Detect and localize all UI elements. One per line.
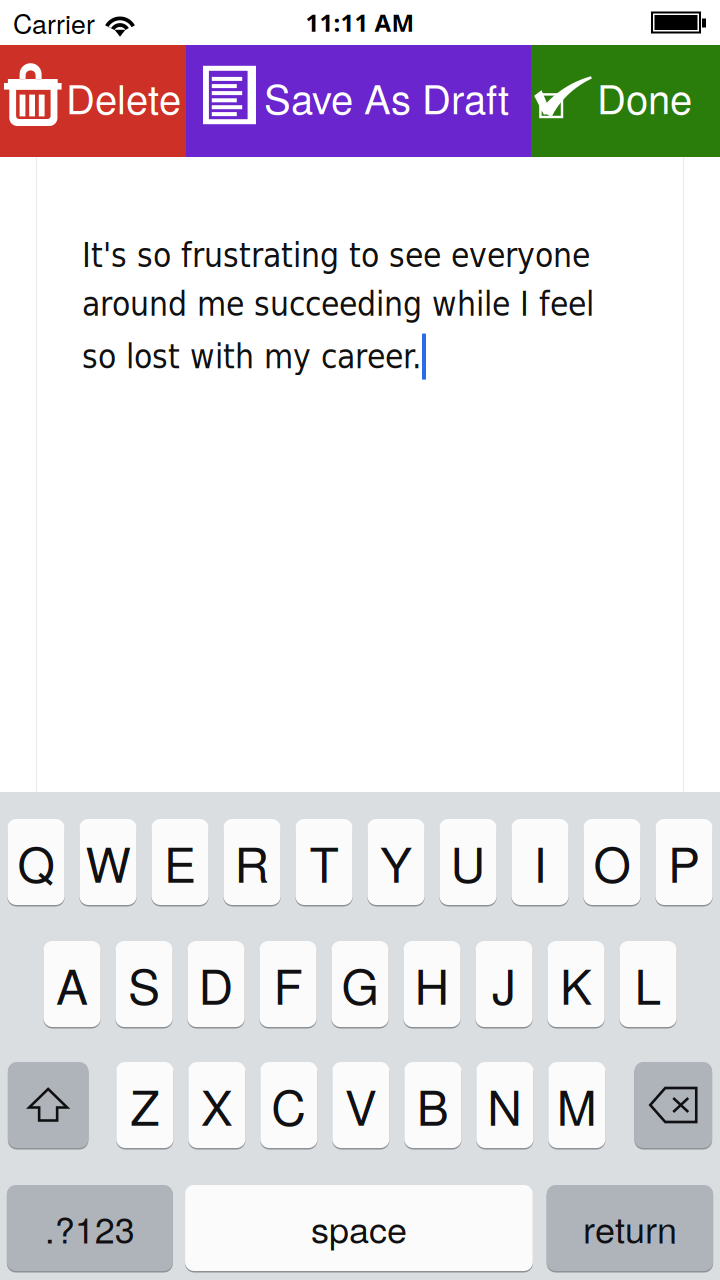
button[interactable]: space <box>185 1185 533 1273</box>
staticText: It's so frustrating to see everyone <box>82 236 590 275</box>
button[interactable]: L <box>619 941 677 1029</box>
button[interactable]: E <box>151 819 209 907</box>
button[interactable]: Shift <box>8 1062 88 1150</box>
button[interactable]: Y <box>367 819 425 907</box>
button[interactable]: F <box>259 941 317 1029</box>
staticText: L <box>634 950 661 1018</box>
button[interactable]: Save As Draft <box>186 45 531 157</box>
staticText: F <box>273 950 302 1018</box>
button[interactable]: Done <box>531 45 720 157</box>
button[interactable]: B <box>404 1062 461 1150</box>
staticText: A <box>56 950 88 1018</box>
staticText: Z <box>130 1071 159 1139</box>
button[interactable]: A <box>43 941 101 1029</box>
staticText: .?123 <box>45 1202 135 1254</box>
button[interactable]: T <box>295 819 353 907</box>
staticText: N <box>487 1071 522 1139</box>
staticText: return <box>583 1202 677 1254</box>
staticText: Carrier <box>13 3 95 42</box>
button[interactable]: N <box>476 1062 533 1150</box>
button[interactable]: Q <box>7 819 65 907</box>
button[interactable]: D <box>187 941 245 1029</box>
staticText: U <box>450 828 485 896</box>
staticText: I <box>533 828 546 896</box>
button[interactable]: return <box>547 1185 713 1273</box>
staticText: X <box>201 1071 233 1139</box>
button[interactable]: G <box>331 941 389 1029</box>
staticText: Save As Draft <box>264 68 509 126</box>
button[interactable]: Delete <box>0 45 186 157</box>
staticText: O <box>593 828 630 896</box>
button[interactable]: .?123 <box>7 1185 173 1273</box>
button[interactable]: X <box>188 1062 245 1150</box>
staticText: S <box>128 950 160 1018</box>
staticText: B <box>417 1071 449 1139</box>
button[interactable]: K <box>547 941 605 1029</box>
staticText: H <box>414 950 449 1018</box>
staticText: W <box>85 828 130 896</box>
staticText: Y <box>380 828 412 896</box>
staticText: K <box>560 950 592 1018</box>
button[interactable]: U <box>439 819 497 907</box>
staticText: J <box>492 950 516 1018</box>
staticText: T <box>309 828 338 896</box>
staticText: E <box>164 828 196 896</box>
button[interactable]: M <box>548 1062 605 1150</box>
button[interactable]: P <box>655 819 713 907</box>
staticText: Delete <box>66 68 181 126</box>
button[interactable]: I <box>511 819 569 907</box>
staticText: Q <box>17 828 54 896</box>
staticText: space <box>311 1202 407 1254</box>
button[interactable]: R <box>223 819 281 907</box>
button[interactable]: Z <box>116 1062 173 1150</box>
button[interactable]: H <box>403 941 461 1029</box>
button[interactable]: J <box>475 941 533 1029</box>
staticText: V <box>345 1071 377 1139</box>
button[interactable]: C <box>260 1062 317 1150</box>
staticText: M <box>557 1071 597 1139</box>
staticText: P <box>668 828 700 896</box>
staticText: Done <box>597 68 692 126</box>
staticText: D <box>198 950 233 1018</box>
button[interactable]: Delete <box>634 1062 712 1150</box>
staticText: R <box>234 828 269 896</box>
staticText: 11:11 AM <box>305 6 414 39</box>
button[interactable]: O <box>583 819 641 907</box>
staticText: C <box>271 1071 306 1139</box>
staticText: so lost with my career. <box>82 337 422 376</box>
button[interactable]: S <box>115 941 173 1029</box>
button[interactable]: W <box>79 819 137 907</box>
staticText: around me succeeding while I feel <box>82 285 594 324</box>
staticText: G <box>341 950 378 1018</box>
button[interactable]: V <box>332 1062 389 1150</box>
